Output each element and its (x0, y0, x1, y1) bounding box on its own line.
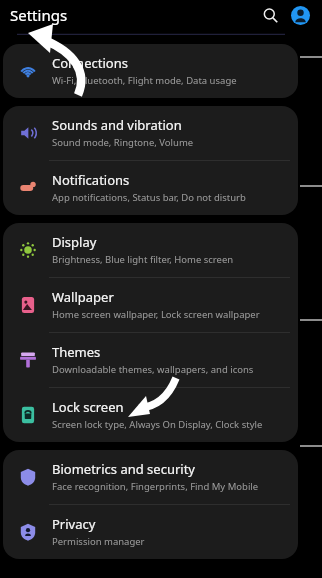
staticText: Sound mode, Ringtone, Volume (52, 136, 194, 149)
staticText: Permission manager (52, 535, 145, 548)
staticText: Face recognition, Fingerprints, Find My … (52, 480, 259, 493)
staticText: Wi-Fi, Bluetooth, Flight mode, Data usag… (52, 74, 237, 87)
button[interactable]: Connections (3, 44, 298, 98)
staticText: Lock screen (52, 398, 124, 416)
button[interactable]: Search (257, 2, 283, 28)
button[interactable]: Themes (3, 333, 298, 387)
button[interactable]: Privacy (3, 505, 298, 559)
staticText: Screen lock type, Always On Display, Clo… (52, 418, 263, 431)
button[interactable]: Account (287, 2, 313, 28)
button[interactable]: Biometrics and security (3, 450, 298, 504)
staticText: Display (52, 233, 97, 251)
button[interactable]: Lock screen (3, 388, 298, 442)
staticText: Privacy (52, 515, 96, 533)
button[interactable]: Sounds and vibration (3, 106, 298, 160)
staticText: Settings (10, 5, 68, 25)
staticText: Downloadable themes, wallpapers, and ico… (52, 363, 254, 376)
button[interactable]: Notifications (3, 161, 298, 215)
button[interactable]: Wallpaper (3, 278, 298, 332)
button[interactable]: Display (3, 223, 298, 277)
staticText: Brightness, Blue light filter, Home scre… (52, 253, 234, 266)
staticText: App notifications, Status bar, Do not di… (52, 191, 246, 204)
staticText: Biometrics and security (52, 460, 196, 478)
staticText: Sounds and vibration (52, 116, 182, 134)
staticText: Wallpaper (52, 288, 114, 306)
staticText: Themes (52, 343, 101, 361)
staticText: Notifications (52, 171, 130, 189)
staticText: Connections (52, 54, 128, 72)
staticText: Home screen wallpaper, Lock screen wallp… (52, 308, 260, 321)
